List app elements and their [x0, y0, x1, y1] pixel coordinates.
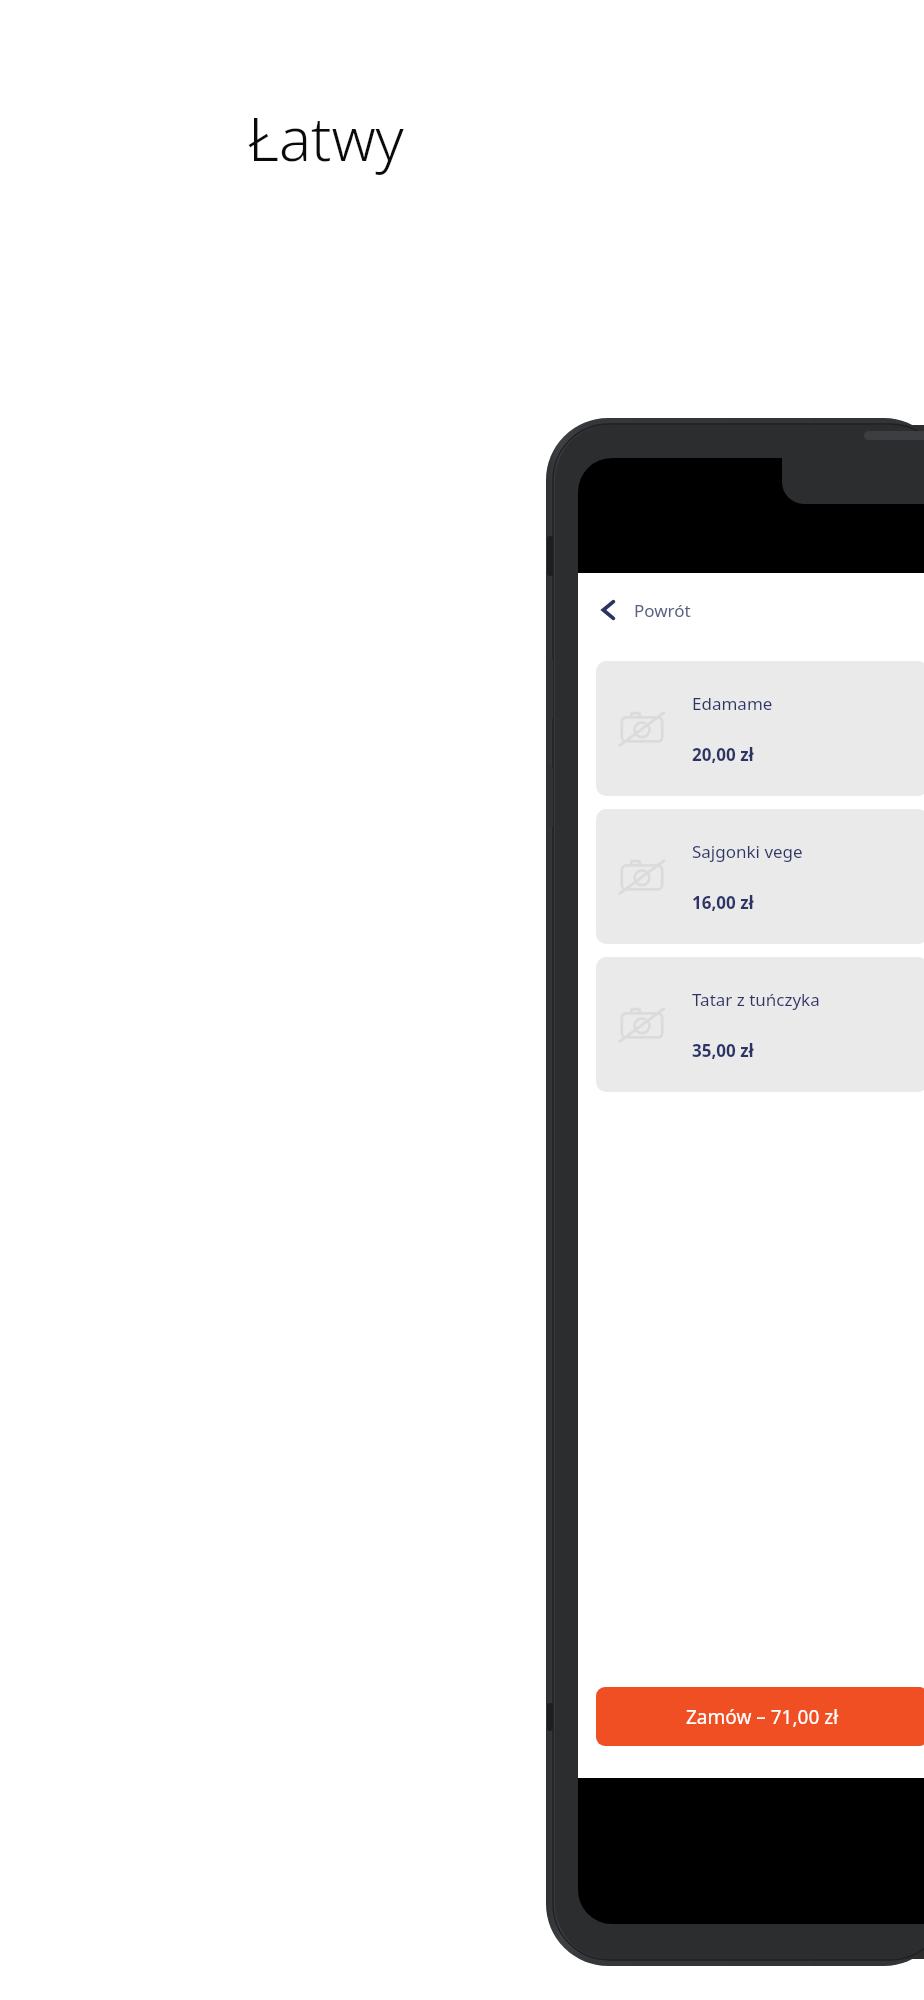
- staticText: 20,00 zł: [692, 743, 754, 766]
- staticText: Zamów – 71,00 zł: [686, 1704, 839, 1730]
- button[interactable]: Sajgonki vege: [596, 809, 924, 944]
- button[interactable]: Tatar z tuńczyka: [596, 957, 924, 1092]
- button[interactable]: Zamów – 71,00 zł: [596, 1687, 924, 1746]
- staticText: Sajgonki vege: [692, 840, 803, 863]
- staticText: Powrót: [634, 599, 691, 622]
- button[interactable]: Back: [578, 573, 924, 647]
- staticText: Edamame: [692, 692, 773, 715]
- staticText: Łatwy: [248, 97, 404, 179]
- button[interactable]: Edamame: [596, 661, 924, 796]
- staticText: 16,00 zł: [692, 891, 754, 914]
- staticText: 35,00 zł: [692, 1039, 754, 1062]
- staticText: Tatar z tuńczyka: [692, 988, 820, 1011]
- other: Back: [598, 599, 620, 621]
